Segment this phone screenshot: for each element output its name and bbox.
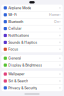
staticText: Bluetooth (8, 20, 23, 24)
staticText: Siri & Search (8, 79, 28, 83)
staticText: Airplane Mode (8, 6, 31, 10)
staticText: On (54, 20, 59, 24)
button[interactable]: General (1, 55, 63, 61)
button[interactable]: Notifications (1, 32, 63, 39)
staticText: Notifications (8, 33, 29, 38)
button[interactable]: Siri & Search (1, 78, 63, 84)
button[interactable]: Display & Brightness (1, 62, 63, 68)
button[interactable]: Focus (1, 46, 63, 52)
button[interactable]: Bluetooth (1, 18, 63, 25)
button[interactable]: Airplane Mode (1, 5, 63, 11)
staticText: Wallpaper (8, 72, 24, 76)
button[interactable]: Cellular (1, 25, 63, 32)
staticText: Cellular (8, 26, 21, 31)
staticText: Home (49, 13, 59, 17)
button[interactable]: Wi-Fi (1, 11, 63, 18)
staticText: Sounds & Haptics (8, 40, 37, 44)
button[interactable]: Wallpaper (1, 71, 63, 77)
staticText: General (8, 56, 21, 60)
staticText: Wi-Fi (8, 13, 17, 17)
staticText: Focus (8, 47, 18, 51)
button[interactable]: Sounds & Haptics (1, 39, 63, 46)
staticText: Display & Brightness (8, 63, 42, 67)
button[interactable]: Privacy & Security (1, 85, 63, 91)
staticText: Privacy & Security (8, 86, 37, 90)
